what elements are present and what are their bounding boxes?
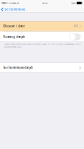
staticText: Roaming danych bbox=[3, 35, 25, 39]
staticText: 4G bbox=[74, 24, 78, 28]
button[interactable]: Głosowe i dane bbox=[0, 21, 84, 31]
staticText: 4G bbox=[16, 2, 18, 4]
button[interactable]: Sieć komórkowa danych bbox=[0, 63, 84, 73]
staticText: 20:44 bbox=[42, 2, 47, 4]
staticText: Wyłącz Dane komórkowe dla wszystkich usł… bbox=[4, 43, 80, 48]
staticText: Sieć komórkowa danych bbox=[3, 66, 33, 69]
staticText: Głosowe i dane bbox=[3, 24, 25, 28]
button[interactable]: Sieć komórkowa bbox=[0, 6, 26, 13]
staticText: Sieć komórkowa bbox=[4, 8, 24, 11]
staticText: 100% bbox=[71, 2, 76, 4]
staticText: Orange bbox=[9, 2, 16, 4]
